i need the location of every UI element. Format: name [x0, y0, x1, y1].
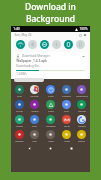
staticText: Download in Background — [0, 1, 101, 25]
staticText: 100% — [79, 27, 88, 31]
button[interactable]: Contacts — [59, 85, 74, 98]
button[interactable]: Clock — [43, 85, 58, 98]
button[interactable]: Duo — [59, 100, 74, 113]
button[interactable]: Gboard — [74, 100, 89, 113]
staticText: Google — [78, 125, 86, 128]
staticText: ES File — [16, 110, 23, 113]
button[interactable]: Maps — [59, 130, 74, 143]
staticText: Sun, May 24 — [14, 33, 32, 37]
staticText: Hub — [32, 140, 37, 143]
button[interactable]: Drive — [43, 100, 58, 113]
button[interactable]: Google+ — [12, 130, 27, 143]
staticText: Google+ — [15, 140, 24, 143]
button[interactable]: Chat — [12, 85, 27, 98]
staticText: Chat — [17, 95, 22, 98]
button[interactable]: Quick setting toggle — [64, 40, 73, 49]
staticText: Fdroid — [16, 125, 23, 128]
staticText: Gmail — [64, 125, 70, 128]
button[interactable]: Quick setting toggle — [40, 40, 49, 49]
button[interactable]: Recents — [69, 146, 74, 151]
staticText: Files — [32, 125, 37, 128]
staticText: Drive — [48, 110, 54, 113]
staticText: Contacts — [62, 95, 71, 98]
button[interactable]: Keep — [43, 130, 58, 143]
button[interactable]: Search apps — [14, 78, 44, 82]
button[interactable]: Download Manager — [13, 52, 88, 79]
staticText: Chrome — [30, 95, 39, 98]
staticText: 1:40 — [13, 27, 20, 31]
button[interactable]: ES File — [12, 100, 27, 113]
staticText: Maps — [64, 140, 70, 143]
staticText: 1.2 MB/s — [16, 72, 27, 76]
staticText: Keep — [48, 140, 54, 143]
button[interactable]: Gmail — [59, 115, 74, 128]
button[interactable]: Home — [48, 146, 53, 151]
button[interactable]: FindBuzz — [43, 115, 58, 128]
button[interactable]: Quick setting toggle — [28, 40, 37, 49]
button[interactable]: Quick setting toggle — [76, 40, 85, 49]
staticText: Maps2 — [78, 140, 85, 143]
staticText: Downloads — [76, 95, 88, 98]
button[interactable]: Quick setting toggle — [52, 40, 61, 49]
button[interactable]: Downloads — [74, 85, 89, 98]
button[interactable]: Fdroid — [12, 115, 27, 128]
button[interactable]: Quick setting toggle — [16, 40, 25, 49]
staticText: Duo — [64, 110, 69, 113]
staticText: Gboard — [78, 110, 86, 113]
button[interactable]: Maps2 — [74, 130, 89, 143]
button[interactable]: Files — [27, 115, 42, 128]
button[interactable]: Google — [74, 115, 89, 128]
staticText: Clock — [48, 95, 54, 98]
staticText: FlixBus — [31, 110, 39, 113]
button[interactable]: FlixBus — [27, 100, 42, 113]
button[interactable]: Back — [27, 146, 32, 151]
staticText: Download Manager — [22, 54, 50, 58]
staticText: Wallpaper_1.4.3.apk — [16, 59, 47, 63]
staticText: Downloading file… — [16, 64, 41, 68]
button[interactable]: Chrome — [27, 85, 42, 98]
button[interactable]: Hub — [27, 130, 42, 143]
staticText: FindBuzz — [46, 125, 56, 128]
